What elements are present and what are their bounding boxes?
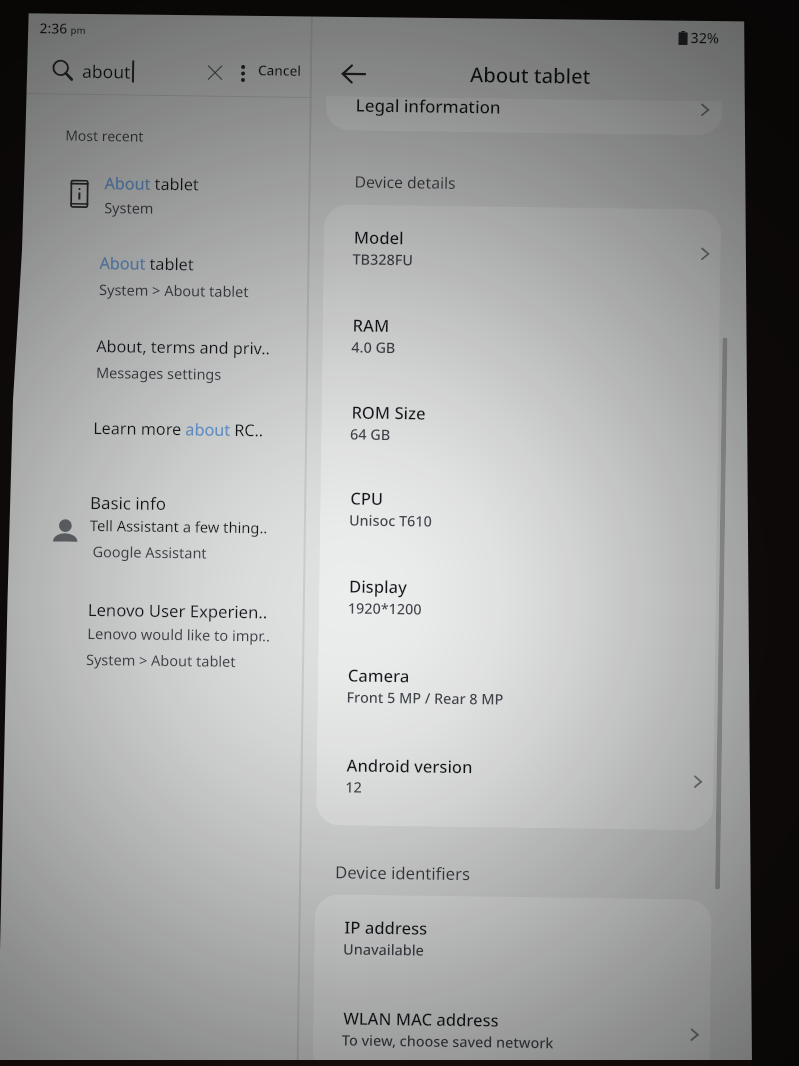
- staticText: Tell Assistant a few thing..: [90, 515, 268, 537]
- staticText: Device identifiers: [335, 860, 470, 885]
- button[interactable]: Lenovo User Experien..: [14, 595, 303, 685]
- staticText: about: [82, 59, 131, 83]
- button[interactable]: About tablet: [20, 169, 309, 239]
- staticText: CPU: [350, 486, 383, 510]
- staticText: 32%: [690, 28, 720, 47]
- staticText: IP address: [344, 915, 428, 940]
- staticText: 4.0 GB: [351, 337, 395, 358]
- staticText: Google Assistant: [92, 541, 208, 563]
- button[interactable]: More options: [227, 57, 259, 89]
- button[interactable]: IP address: [314, 894, 712, 987]
- staticText: About tablet: [104, 172, 200, 195]
- staticText: 12: [345, 777, 362, 798]
- button[interactable]: Basic info: [15, 488, 304, 578]
- staticText: System > About tablet: [99, 279, 249, 301]
- staticText: Lenovo would like to impr..: [87, 623, 271, 645]
- staticText: Unavailable: [343, 939, 424, 961]
- button[interactable]: Search: [46, 53, 80, 88]
- staticText: Device details: [354, 170, 457, 193]
- button[interactable]: Legal information: [325, 71, 723, 135]
- staticText: 1920*1200: [348, 598, 422, 619]
- button[interactable]: CPU: [319, 465, 718, 558]
- staticText: Camera: [348, 663, 410, 687]
- button[interactable]: Learn more about RC..: [17, 414, 305, 454]
- button[interactable]: WLAN MAC address: [312, 985, 711, 1066]
- button[interactable]: Clear search: [199, 56, 231, 89]
- button[interactable]: Display: [318, 553, 716, 646]
- staticText: RAM: [352, 313, 390, 337]
- staticText: About, terms and priv..: [96, 335, 270, 359]
- button[interactable]: Back: [331, 51, 375, 96]
- staticText: WLAN MAC address: [343, 1006, 499, 1032]
- staticText: pm: [70, 24, 86, 37]
- staticText: About tablet: [470, 60, 591, 90]
- staticText: 2:36: [39, 18, 68, 38]
- staticText: About tablet: [99, 252, 195, 275]
- staticText: System: [104, 197, 154, 218]
- button[interactable]: Cancel: [254, 55, 305, 86]
- staticText: Most recent: [65, 126, 144, 146]
- staticText: 64 GB: [350, 424, 391, 445]
- button[interactable]: ROM Size: [321, 379, 719, 472]
- staticText: Basic info: [90, 491, 166, 515]
- staticText: Lenovo User Experien..: [88, 598, 268, 623]
- staticText: TB328FU: [352, 249, 414, 270]
- staticText: Android version: [346, 753, 473, 778]
- staticText: Front 5 MP / Rear 8 MP: [346, 687, 504, 710]
- staticText: Unisoc T610: [349, 510, 432, 532]
- staticText: ROM Size: [351, 400, 427, 424]
- staticText: To view, choose saved network: [342, 1030, 554, 1053]
- button[interactable]: Model: [323, 204, 721, 297]
- button[interactable]: About, terms and priv..: [18, 332, 306, 396]
- staticText: Cancel: [258, 61, 301, 80]
- staticText: Model: [354, 225, 404, 249]
- staticText: Messages settings: [96, 362, 222, 384]
- button[interactable]: RAM: [322, 292, 720, 385]
- button[interactable]: Camera: [317, 642, 715, 735]
- staticText: Legal information: [355, 93, 501, 118]
- button[interactable]: Android version: [316, 732, 714, 825]
- staticText: System > About tablet: [86, 649, 236, 671]
- staticText: Learn more about RC..: [93, 417, 264, 441]
- button[interactable]: About tablet: [19, 249, 308, 313]
- staticText: Display: [349, 574, 407, 598]
